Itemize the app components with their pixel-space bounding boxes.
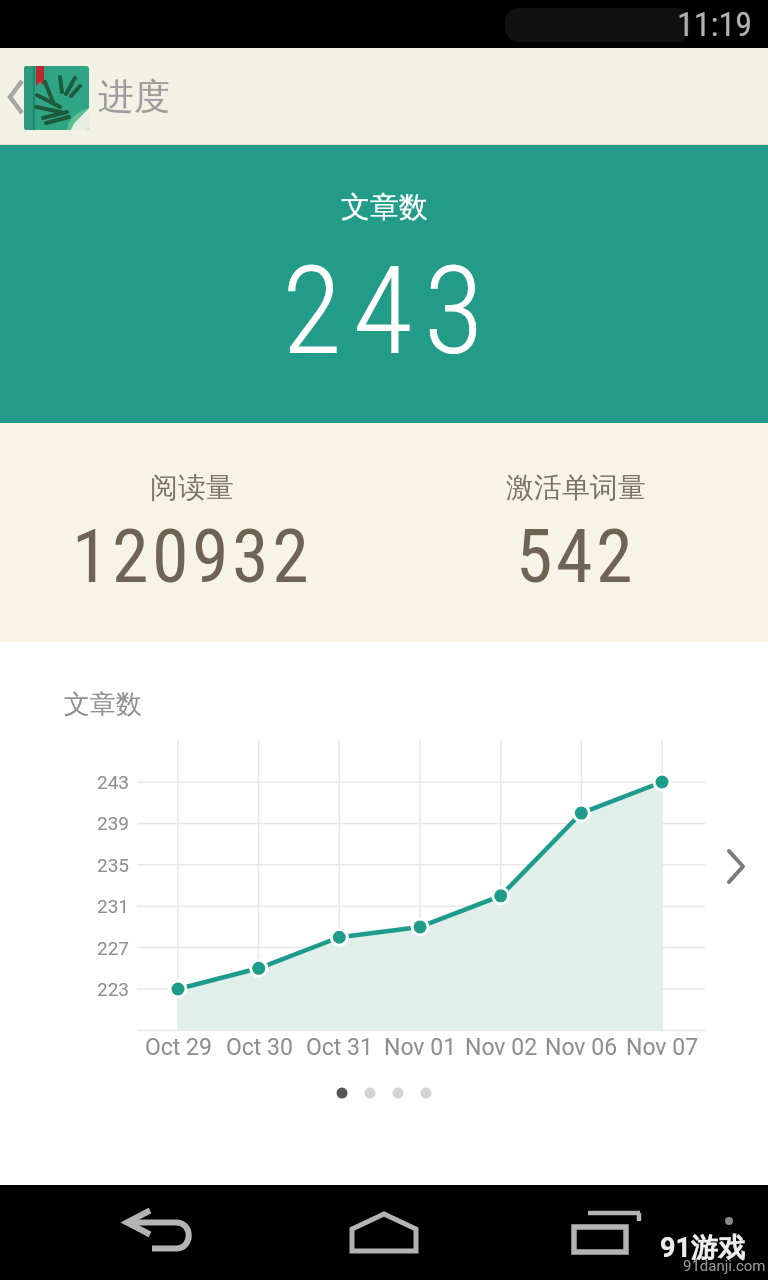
staticText: 文章数 <box>64 688 142 721</box>
staticText: 91游戏 <box>660 1231 745 1265</box>
staticText: 11:19 <box>677 4 753 44</box>
staticText: Nov 07 <box>626 1034 699 1061</box>
staticText: 243 <box>282 239 495 365</box>
staticText: 223 <box>97 978 130 1000</box>
staticText: 235 <box>97 854 130 876</box>
staticText: Nov 02 <box>465 1034 538 1061</box>
staticText: Nov 01 <box>384 1034 457 1061</box>
staticText: Oct 29 <box>145 1034 212 1061</box>
button[interactable] <box>24 66 89 130</box>
staticText: Oct 30 <box>226 1034 293 1061</box>
staticText: 进度 <box>98 74 170 119</box>
button[interactable] <box>0 48 32 145</box>
staticText: 231 <box>97 895 130 917</box>
staticText: Oct 31 <box>306 1034 373 1061</box>
button[interactable] <box>48 1185 272 1280</box>
staticText: 227 <box>97 937 130 959</box>
staticText: 阅读量 <box>150 470 234 505</box>
staticText: 542 <box>516 513 637 591</box>
staticText: 激活单词量 <box>506 470 646 505</box>
button[interactable] <box>706 827 766 907</box>
staticText: Nov 06 <box>545 1034 618 1061</box>
staticText: 243 <box>97 771 130 793</box>
staticText: 91danji.com <box>683 1257 766 1275</box>
staticText: 120932 <box>72 513 313 591</box>
button[interactable] <box>272 1185 496 1280</box>
button[interactable] <box>496 1185 720 1280</box>
staticText: 文章数 <box>341 189 428 226</box>
staticText: 239 <box>97 812 130 834</box>
